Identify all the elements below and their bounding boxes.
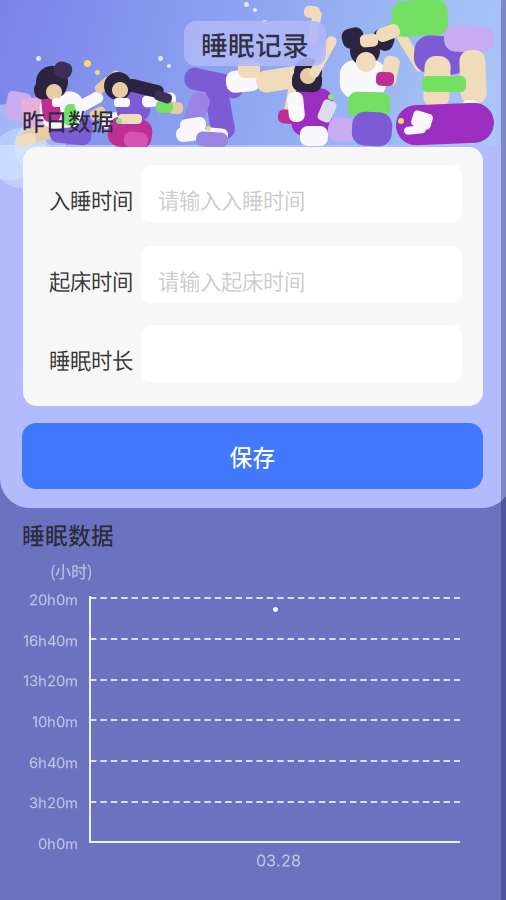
staticText: 起床时间 — [49, 265, 133, 296]
staticText: 保存 — [229, 440, 275, 472]
staticText: 睡眠数据 — [22, 518, 114, 551]
staticText: 13h20m — [23, 672, 78, 690]
staticText: 请输入起床时间 — [158, 265, 305, 296]
staticText: 入睡时间 — [49, 184, 133, 215]
staticText: 6h40m — [29, 754, 78, 772]
staticText: 16h40m — [23, 632, 78, 650]
staticText: 睡眠时长 — [49, 344, 133, 375]
button[interactable]: 保存 — [22, 423, 483, 489]
staticText: 昨日数据 — [22, 104, 114, 137]
staticText: 0h0m — [38, 835, 78, 853]
staticText: 3h20m — [29, 794, 78, 812]
staticText: 10h0m — [32, 713, 78, 731]
button[interactable]: 睡眠记录 — [184, 21, 326, 66]
staticText: 20h0m — [29, 591, 78, 609]
staticText: 请输入入睡时间 — [158, 184, 305, 215]
staticText: (小时) — [50, 559, 92, 582]
staticText: 03.28 — [256, 851, 301, 870]
staticText: 睡眠记录 — [201, 24, 309, 63]
